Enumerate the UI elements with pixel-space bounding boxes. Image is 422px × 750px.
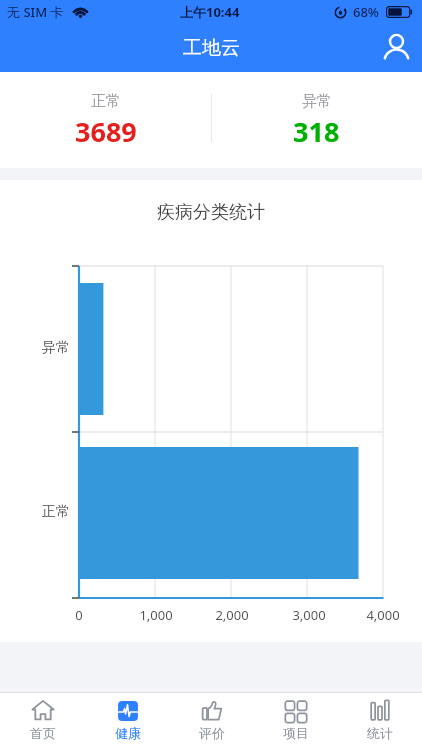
- staticText: 评价: [199, 725, 225, 741]
- button[interactable]: 评价: [170, 693, 254, 750]
- staticText: 上午10:44: [180, 3, 240, 21]
- button[interactable]: Profile: [374, 26, 418, 70]
- button[interactable]: 项目: [254, 693, 338, 750]
- staticText: 68%: [353, 3, 379, 21]
- button[interactable]: 统计: [338, 693, 422, 750]
- staticText: 疾病分类统计: [0, 201, 422, 224]
- staticText: 3,000: [279, 606, 339, 624]
- button[interactable]: 异常: [211, 72, 422, 168]
- staticText: 异常: [302, 92, 332, 111]
- staticText: 正常: [91, 92, 121, 111]
- button[interactable]: 首页: [0, 693, 85, 750]
- button[interactable]: 健康: [85, 693, 170, 750]
- staticText: 318: [293, 113, 340, 150]
- staticText: 3689: [75, 113, 137, 150]
- staticText: 1,000: [126, 606, 186, 624]
- staticText: 异常: [10, 339, 70, 357]
- staticText: 正常: [10, 503, 70, 521]
- staticText: 统计: [367, 725, 393, 741]
- staticText: 无 SIM 卡: [7, 3, 64, 21]
- staticText: 健康: [115, 725, 141, 741]
- staticText: 0: [49, 606, 109, 624]
- staticText: 项目: [283, 725, 309, 741]
- staticText: 首页: [30, 725, 56, 741]
- staticText: 2,000: [202, 606, 262, 624]
- staticText: 工地云: [183, 36, 240, 60]
- button[interactable]: 正常: [0, 72, 211, 168]
- staticText: 4,000: [353, 606, 413, 624]
